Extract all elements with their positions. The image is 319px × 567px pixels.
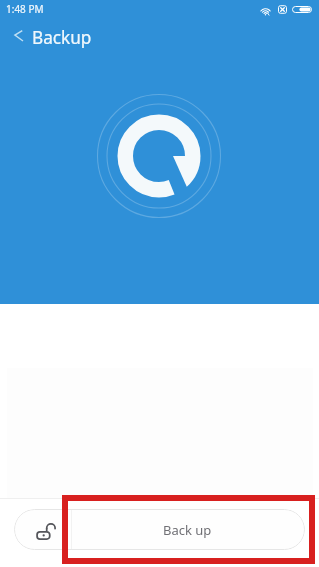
button[interactable]: Back up — [72, 509, 305, 550]
staticText: Backup — [32, 26, 92, 49]
staticText: 1:48 PM — [6, 2, 44, 16]
staticText: Back up — [163, 521, 212, 539]
button[interactable]: Back — [0, 22, 36, 58]
button[interactable]: Unlock — [14, 509, 71, 550]
